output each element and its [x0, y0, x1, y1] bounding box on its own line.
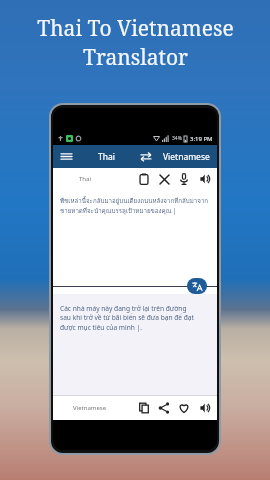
staticText: Các nhà máy này đang trở lại trên đường … — [60, 304, 195, 332]
button[interactable]: Thai — [79, 145, 134, 168]
staticText: พืชเหล่านี้จะกลับมาอยู่บนเตียงถนนหลังจาก… — [60, 196, 210, 216]
button[interactable]: Listen — [194, 168, 214, 190]
button[interactable]: Menu — [53, 145, 79, 168]
button[interactable]: Translate — [187, 278, 207, 294]
button[interactable]: Paste — [134, 168, 154, 190]
staticText: Thai To Vietnamese — [37, 14, 234, 43]
staticText: Vietnamese — [73, 404, 107, 412]
button[interactable]: Clear — [154, 168, 174, 190]
button[interactable]: Vietnamese — [158, 145, 214, 168]
staticText: Translator — [83, 43, 188, 72]
button[interactable]: Swap languages — [134, 145, 158, 168]
button[interactable]: Favorite — [174, 397, 194, 419]
staticText: Thai — [98, 151, 115, 163]
button[interactable]: Listen — [194, 397, 214, 419]
staticText: Vietnamese — [163, 151, 210, 163]
staticText: Thai — [79, 175, 91, 183]
button[interactable]: Copy — [134, 397, 154, 419]
button[interactable]: Voice input — [174, 168, 194, 190]
staticText: 34% — [172, 135, 182, 142]
button[interactable]: Share — [154, 397, 174, 419]
staticText: 3:19 PM — [190, 135, 213, 143]
